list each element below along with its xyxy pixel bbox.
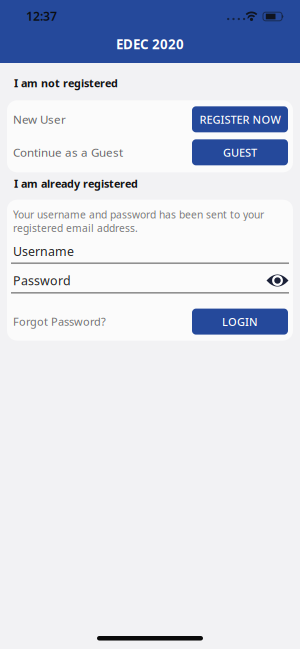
staticText: LOGIN [222,314,258,329]
button[interactable]: REGISTER NOW [192,106,288,132]
staticText: Username [13,243,74,259]
button[interactable]: Password [7,272,293,294]
staticText: GUEST [223,145,257,160]
staticText: I am already registered [14,176,138,191]
staticText: EDEC 2020 [116,35,184,53]
staticText: Continue as a Guest [13,145,123,160]
button[interactable]: Username [7,243,293,264]
staticText: 12:37 [26,8,57,24]
staticText: Forgot Password? [13,314,106,329]
button[interactable]: LOGIN [192,309,288,335]
button[interactable]: GUEST [192,139,288,165]
staticText: Your username and password has been sent… [13,208,264,235]
staticText: Password [13,272,71,289]
staticText: I am not registered [14,76,118,90]
staticText: New User [13,112,66,127]
button[interactable]: Forgot Password? [7,314,106,329]
staticText: REGISTER NOW [199,112,280,127]
button[interactable] [266,272,293,289]
